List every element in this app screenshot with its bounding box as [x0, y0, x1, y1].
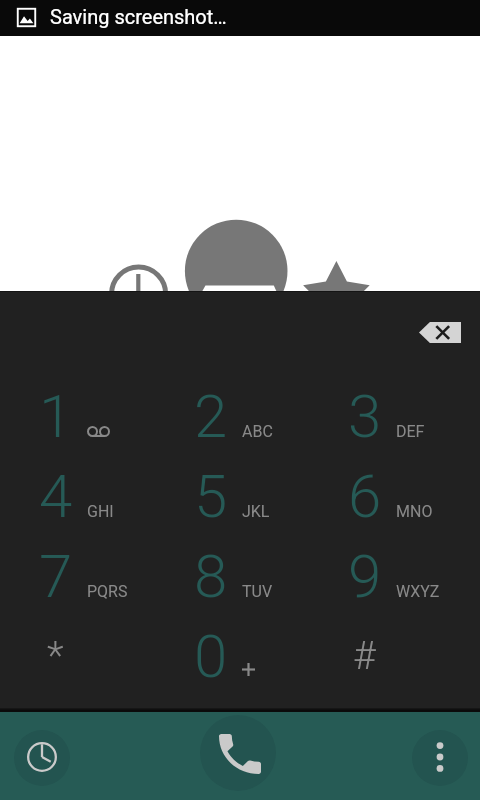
staticText: JKL: [242, 502, 270, 521]
button[interactable]: [320, 619, 480, 699]
button[interactable]: More options: [412, 730, 468, 786]
button[interactable]: [320, 459, 480, 539]
button[interactable]: [160, 619, 320, 699]
button[interactable]: Dial: [200, 715, 276, 791]
button[interactable]: [0, 379, 160, 459]
staticText: 4: [39, 461, 73, 531]
staticText: PQRS: [87, 582, 128, 601]
button[interactable]: [0, 459, 160, 539]
staticText: MNO: [396, 502, 433, 521]
button[interactable]: [160, 539, 320, 619]
staticText: 3: [348, 381, 382, 451]
staticText: ABC: [242, 422, 273, 441]
button[interactable]: [320, 539, 480, 619]
staticText: WXYZ: [396, 582, 440, 601]
staticText: *: [47, 633, 64, 679]
staticText: 5: [194, 461, 228, 531]
staticText: 7: [39, 541, 73, 611]
button[interactable]: Backspace: [406, 306, 474, 358]
staticText: Saving screenshot…: [50, 5, 227, 28]
staticText: TUV: [242, 582, 273, 601]
staticText: 2: [194, 381, 228, 451]
button[interactable]: [0, 619, 160, 699]
staticText: GHI: [87, 502, 114, 521]
staticText: 6: [348, 461, 382, 531]
button[interactable]: [320, 379, 480, 459]
button[interactable]: Call history: [14, 730, 70, 786]
staticText: 9: [348, 541, 382, 611]
button[interactable]: [0, 539, 160, 619]
button[interactable]: [160, 459, 320, 539]
staticText: 1: [39, 381, 73, 451]
staticText: 0: [194, 621, 228, 691]
button[interactable]: [160, 379, 320, 459]
staticText: DEF: [396, 422, 425, 441]
staticText: #: [353, 633, 376, 679]
staticText: 8: [194, 541, 228, 611]
